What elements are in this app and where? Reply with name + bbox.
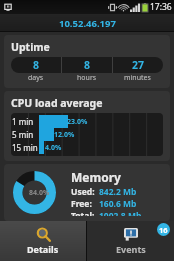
staticText: 5 min xyxy=(12,129,34,140)
staticText: CPU load average xyxy=(11,96,103,110)
staticText: 8 xyxy=(84,58,91,72)
staticText: Used: xyxy=(71,186,95,198)
staticText: 10.52.46.197 xyxy=(59,17,116,30)
staticText: Memory xyxy=(71,169,121,185)
staticText: 84.0% xyxy=(29,188,50,198)
staticText: 1002.8 Mb xyxy=(99,210,142,216)
staticText: Free: xyxy=(71,198,92,210)
staticText: days xyxy=(28,73,44,83)
staticText: 8 xyxy=(33,58,40,72)
staticText: 17:36 xyxy=(150,1,172,13)
staticText: 842.2 Mb xyxy=(99,186,137,198)
staticText: 4.0% xyxy=(45,143,62,153)
staticText: Total: xyxy=(71,210,95,216)
staticText: 16 xyxy=(159,225,168,235)
staticText: 15 min xyxy=(12,142,38,153)
staticText: hours xyxy=(77,73,97,83)
staticText: minutes xyxy=(124,73,151,83)
staticText: 12.0% xyxy=(54,130,75,140)
staticText: 27 xyxy=(132,58,145,72)
staticText: Uptime xyxy=(11,40,50,54)
staticText: 1 min xyxy=(12,116,34,127)
staticText: 160.6 Mb xyxy=(99,198,137,210)
button[interactable]: Events xyxy=(87,221,174,261)
button[interactable]: Details xyxy=(0,221,86,261)
staticText: Events xyxy=(116,243,146,255)
staticText: Details xyxy=(27,243,59,255)
staticText: 23.0% xyxy=(67,117,88,127)
